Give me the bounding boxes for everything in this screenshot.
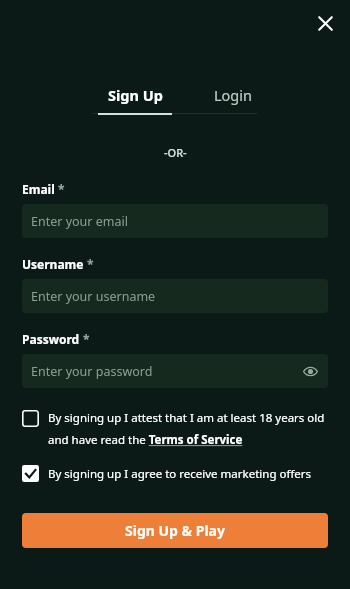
staticText: Login [214,85,252,105]
button[interactable]: Show password [300,361,320,381]
button[interactable]: Enter your email [22,204,328,238]
button[interactable]: Sign Up & Play [22,513,328,548]
button[interactable]: Enter your username [22,279,328,313]
button[interactable]: Login [200,85,266,115]
button[interactable]: By signing up I attest that I am at leas… [22,410,328,448]
staticText: Enter your email [31,213,128,230]
staticText: -OR- [164,145,187,160]
button[interactable]: Sign Up [92,85,178,115]
staticText: Sign Up [108,85,163,105]
staticText: * [87,256,94,272]
staticText: By signing up I agree to receive marketi… [48,466,312,482]
staticText: Sign Up & Play [125,521,225,540]
staticText: Email [22,181,55,197]
staticText: Enter your password [31,363,153,380]
button[interactable]: Enter your password [22,354,328,388]
staticText: By signing up I attest that I am at leas… [48,410,328,448]
button[interactable]: Close [310,8,340,38]
staticText: * [83,331,90,347]
staticText: * [58,181,65,197]
staticText: Username [22,256,84,272]
staticText: Password [22,331,80,347]
button[interactable]: By signing up I agree to receive marketi… [22,465,328,482]
staticText: Enter your username [31,288,156,305]
